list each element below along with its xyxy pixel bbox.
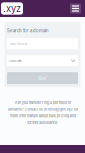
- staticText: com.de: [9, 59, 21, 63]
- staticText: Are you transferring a portfolio of doma…: [7, 100, 77, 125]
- staticText: http://www.: [9, 42, 28, 46]
- button[interactable]: .xyz: [0, 2, 23, 15]
- button[interactable]: Menu: [70, 3, 85, 13]
- staticText: Search for a domain: [7, 28, 49, 33]
- staticText: Go!: [38, 75, 47, 81]
- staticText: .xyz: [3, 3, 21, 14]
- button[interactable]: Go!: [7, 72, 78, 84]
